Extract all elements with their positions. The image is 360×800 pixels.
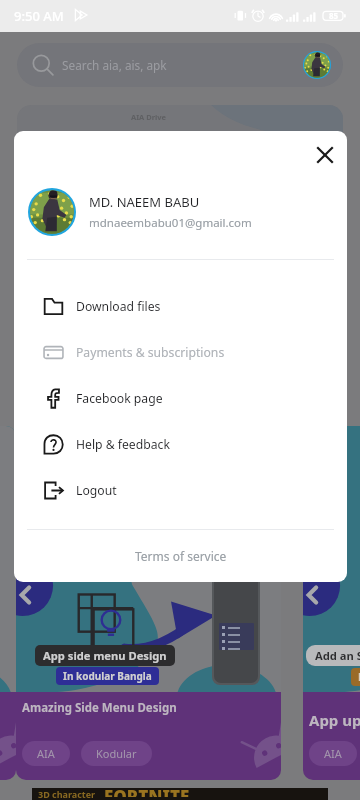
staticText: 3D character (38, 788, 96, 800)
staticText: Search aia, ais, apk (62, 57, 167, 73)
staticText: Amazing Side Menu Design (22, 700, 177, 716)
staticText: AIA (37, 746, 55, 761)
button[interactable]: Help & feedback (14, 421, 347, 467)
button[interactable]: Terms of service (14, 530, 347, 582)
staticText: Terms of service (135, 548, 227, 564)
button[interactable]: App side menu Design (16, 426, 281, 780)
staticText: AIA (324, 746, 342, 761)
button[interactable]: Logout (14, 467, 347, 513)
button[interactable]: Download files (14, 283, 347, 329)
button[interactable]: Add an Splash Screen (303, 426, 360, 780)
staticText: Kodular (96, 746, 137, 761)
staticText: Add an Splash Screen (315, 648, 360, 663)
staticText: FORTNITE (104, 785, 190, 797)
staticText: Payments & subscriptions (76, 344, 225, 361)
staticText: Download files (76, 298, 161, 315)
staticText: 9:50 AM (14, 7, 64, 25)
staticText: mdnaeembabu01@gmail.com (89, 215, 252, 231)
button[interactable]: App side menu Design (0, 426, 16, 780)
staticText: Facebook page (76, 390, 163, 407)
staticText: 85 (329, 10, 339, 21)
staticText: App side menu Design (43, 648, 167, 663)
staticText: Firebase (358, 670, 360, 684)
staticText: App update checker (309, 710, 360, 730)
staticText: AIA Drive (131, 112, 167, 122)
button[interactable]: Close (306, 136, 344, 174)
staticText: Logout (76, 482, 117, 499)
button[interactable]: Payments & subscriptions (14, 329, 347, 375)
button[interactable]: Facebook page (14, 375, 347, 421)
staticText: In kodular Bangla (63, 669, 152, 683)
staticText: Help & feedback (76, 436, 170, 453)
staticText: MD. NAEEM BABU (89, 193, 200, 211)
